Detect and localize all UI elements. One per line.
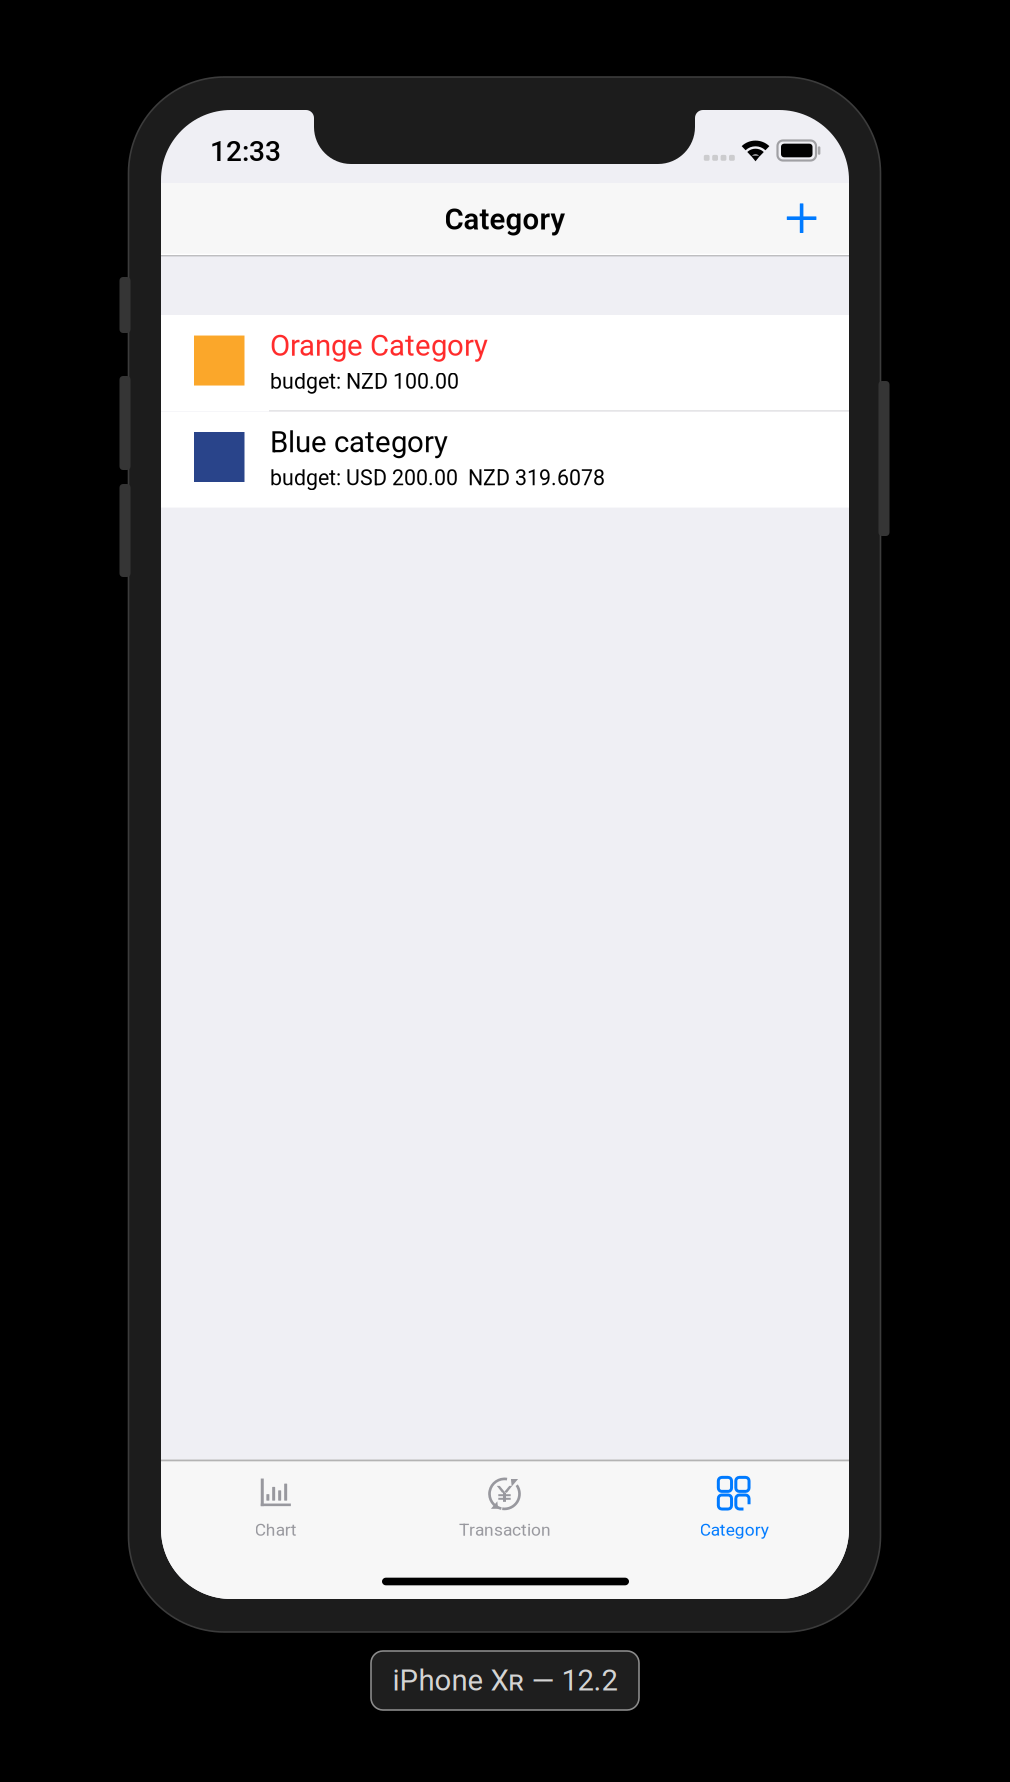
button[interactable]: Orange Category xyxy=(161,315,849,411)
staticText: budget: USD 200.00 NZD 319.6078 xyxy=(270,465,605,490)
staticText: Chart xyxy=(255,1520,297,1540)
button[interactable]: Category xyxy=(620,1462,849,1544)
staticText: budget: NZD 100.00 xyxy=(270,369,459,394)
staticText: Category xyxy=(700,1520,769,1540)
staticText: Category xyxy=(444,202,565,237)
button[interactable]: Blue category xyxy=(161,411,849,507)
button[interactable]: Add category xyxy=(763,183,839,256)
staticText: Blue category xyxy=(270,425,448,459)
staticText: 12:33 xyxy=(210,135,281,168)
button[interactable]: Chart xyxy=(161,1462,390,1544)
staticText: Orange Category xyxy=(270,328,488,363)
staticText: Transaction xyxy=(459,1520,551,1540)
button[interactable]: Transaction xyxy=(390,1462,620,1544)
staticText: iPhone Xʀ — 12.2 xyxy=(392,1663,617,1698)
